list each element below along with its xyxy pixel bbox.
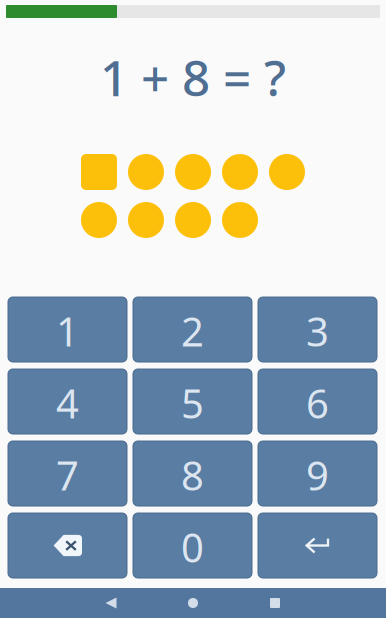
button[interactable]: 8 [133, 441, 252, 506]
staticText: 8 [181, 448, 204, 501]
staticText: 9 [306, 448, 329, 501]
button[interactable]: 3 [258, 297, 377, 362]
staticText: 6 [306, 376, 329, 429]
button[interactable]: 6 [258, 369, 377, 434]
button[interactable]: Delete [8, 513, 127, 578]
button[interactable]: 9 [258, 441, 377, 506]
button[interactable]: 5 [133, 369, 252, 434]
staticText: 2 [181, 304, 204, 357]
staticText: 4 [56, 376, 79, 429]
button[interactable]: 2 [133, 297, 252, 362]
staticText: 5 [181, 376, 204, 429]
button[interactable]: Back [94, 588, 127, 618]
staticText: 3 [306, 304, 329, 357]
button[interactable]: Home [176, 588, 209, 618]
button[interactable]: 1 [8, 297, 127, 362]
button[interactable]: Recent apps [258, 588, 291, 618]
staticText: 0 [181, 520, 204, 573]
button[interactable]: 4 [8, 369, 127, 434]
staticText: 1 [56, 304, 79, 357]
button[interactable]: Enter [258, 513, 377, 578]
staticText: 1 + 8 = ? [100, 44, 286, 110]
button[interactable]: 7 [8, 441, 127, 506]
button[interactable]: 0 [133, 513, 252, 578]
staticText: 7 [56, 448, 79, 501]
